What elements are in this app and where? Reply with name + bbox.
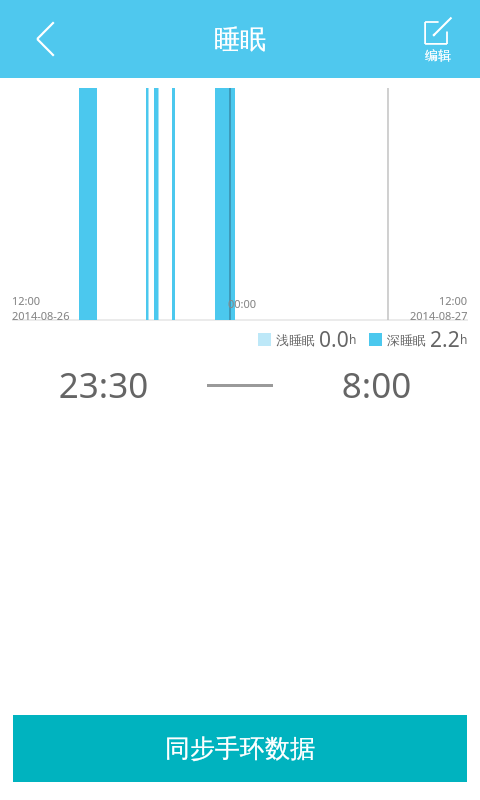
staticText: 12:00 (12, 293, 41, 308)
staticText: 2.2 (430, 325, 460, 354)
button[interactable]: Back (18, 11, 74, 67)
staticText: 12:00 (439, 293, 468, 308)
staticText: 8:00 (273, 361, 480, 409)
button[interactable]: Edit (410, 16, 466, 63)
staticText: 编辑 (425, 47, 451, 63)
staticText: 2014-08-26 (12, 308, 70, 323)
staticText: 同步手环数据 (165, 733, 315, 764)
button[interactable]: 同步手环数据 (13, 715, 467, 782)
staticText: 深睡眠 (387, 332, 426, 348)
staticText: 23:30 (0, 361, 207, 409)
staticText: h (349, 331, 357, 347)
staticText: 0.0 (319, 325, 349, 354)
staticText: 00:00 (228, 296, 257, 311)
staticText: h (460, 331, 468, 347)
staticText: 浅睡眠 (276, 332, 315, 348)
staticText: 2014-08-27 (410, 308, 468, 323)
staticText: 睡眠 (214, 23, 266, 56)
